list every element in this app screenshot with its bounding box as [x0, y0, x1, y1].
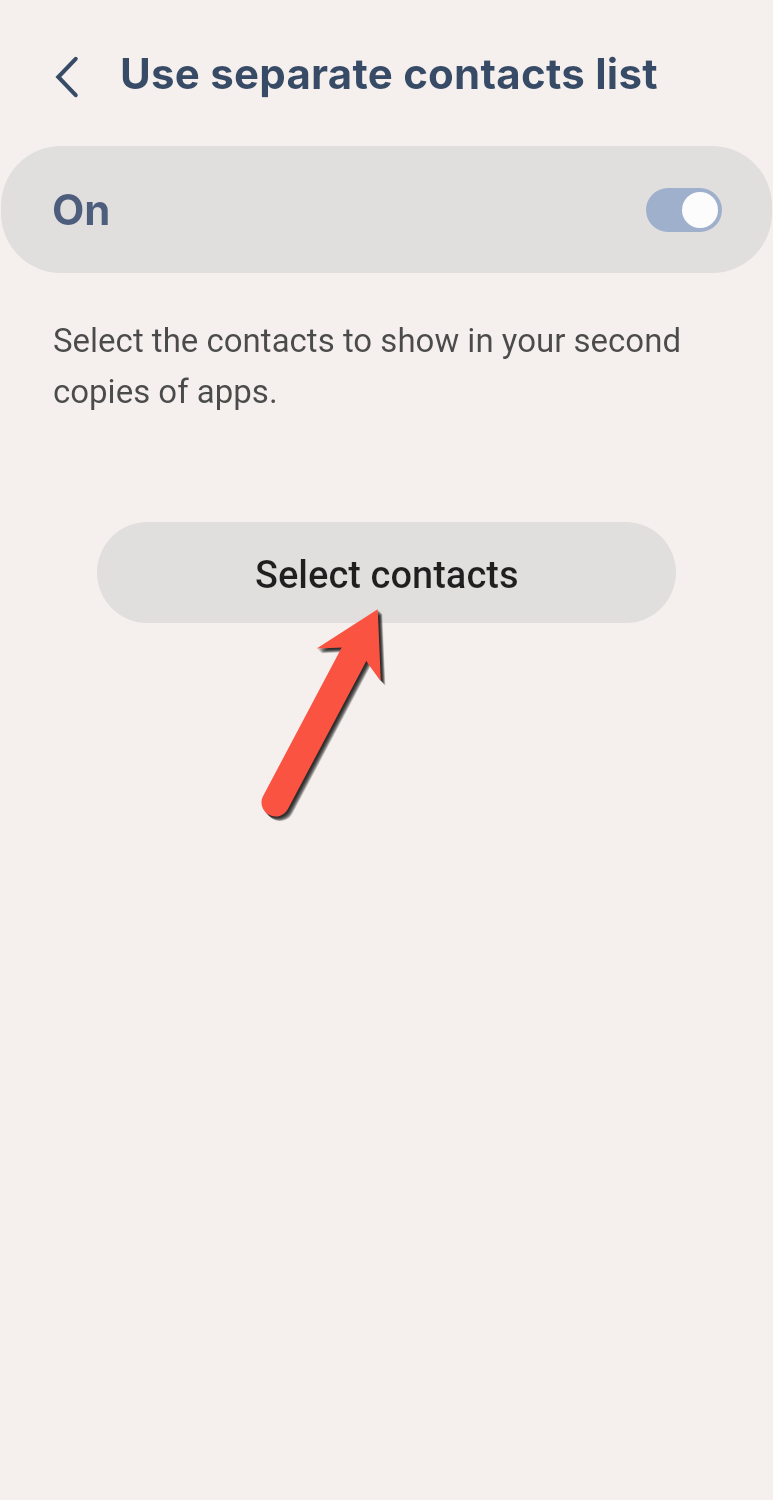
button[interactable]: On	[1, 146, 772, 273]
button[interactable]: Navigate up	[40, 46, 94, 100]
staticText: On	[52, 184, 111, 235]
staticText: Use separate contacts list	[120, 48, 658, 99]
button[interactable]: Use separate contacts list, on	[646, 188, 722, 232]
staticText: Select the contacts to show in your seco…	[53, 321, 695, 411]
staticText: Select contacts	[255, 553, 519, 598]
button[interactable]: Select contacts	[97, 522, 676, 623]
